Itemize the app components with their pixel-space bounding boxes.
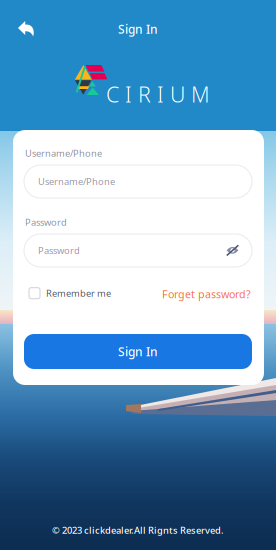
staticText: Sign In (118, 21, 158, 37)
staticText: © 2023 clickdealer.All Rignts Reserved. (52, 524, 224, 536)
button[interactable]: Forget password? (161, 287, 251, 301)
button[interactable]: Back (9, 12, 43, 46)
staticText: C I R I U M (106, 80, 210, 108)
button[interactable]: Sign In (24, 334, 252, 369)
staticText: Username/Phone (25, 147, 102, 159)
staticText: Password (38, 244, 80, 257)
button[interactable]: Remember me (29, 287, 111, 299)
staticText: Username/Phone (38, 175, 115, 188)
staticText: Password (25, 216, 67, 228)
staticText: Forget password? (162, 287, 251, 301)
staticText: Remember me (46, 287, 111, 299)
staticText: Sign In (118, 343, 158, 359)
